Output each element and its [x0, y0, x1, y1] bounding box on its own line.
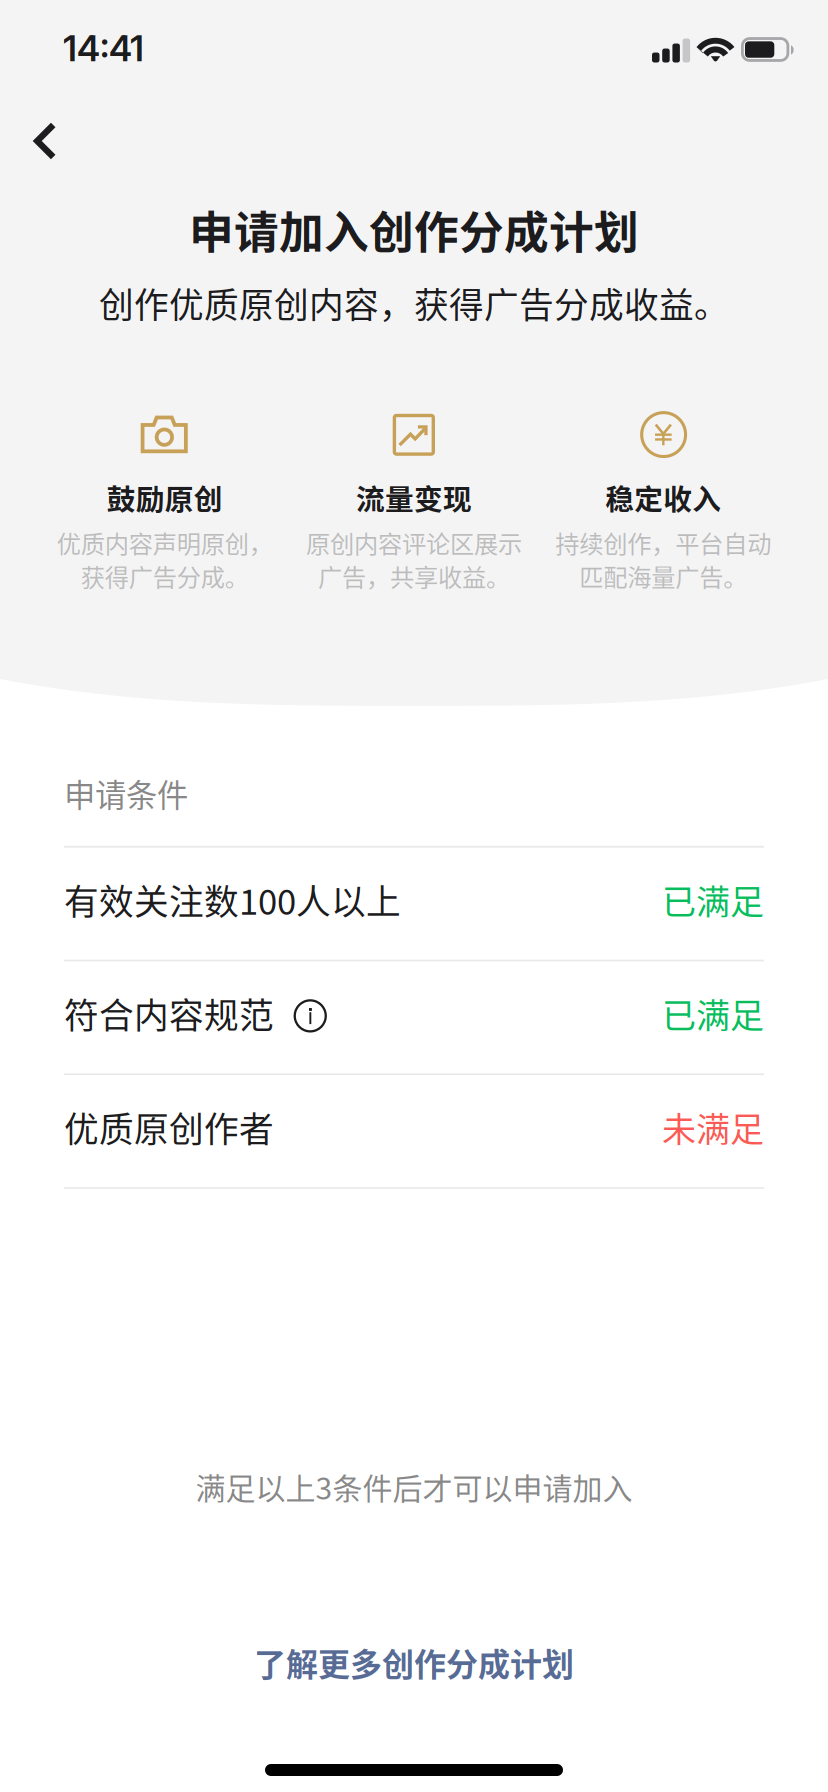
button[interactable]: 了解更多创作分成计划 — [214, 1631, 614, 1693]
staticText: 持续创作，平台自动 — [555, 525, 771, 560]
staticText: 鼓励原创 — [107, 477, 223, 518]
staticText: 广告，共享收益。 — [318, 558, 510, 593]
staticText: 申请加入创作分成计划 — [189, 197, 639, 262]
button[interactable]: 优质原创作者 — [0, 1075, 828, 1189]
staticText: 创作优质原创内容，获得广告分成收益。 — [99, 278, 729, 328]
staticText: 满足以上3条件后才可以申请加入 — [195, 1465, 632, 1508]
staticText: 匹配海量广告。 — [579, 558, 747, 593]
button[interactable]: Back — [0, 94, 90, 180]
staticText: 已满足 — [662, 989, 764, 1038]
staticText: 稳定收入 — [605, 477, 721, 518]
staticText: 获得广告分成。 — [81, 558, 249, 593]
staticText: 优质原创作者 — [64, 1102, 274, 1152]
staticText: 符合内容规范 — [64, 988, 274, 1038]
staticText: 流量变现 — [356, 477, 472, 518]
staticText: 了解更多创作分成计划 — [254, 1639, 574, 1685]
staticText: 已满足 — [662, 875, 764, 924]
staticText: 14:41 — [63, 27, 144, 70]
staticText: 原创内容评论区展示 — [306, 525, 522, 560]
staticText: 未满足 — [662, 1102, 764, 1152]
button[interactable]: 符合内容规范 — [0, 961, 828, 1075]
staticText: 有效关注数100人以上 — [64, 875, 401, 925]
staticText: 申请条件 — [64, 771, 188, 816]
button[interactable]: 有效关注数100人以上 — [0, 848, 828, 961]
staticText: 优质内容声明原创， — [57, 525, 273, 560]
